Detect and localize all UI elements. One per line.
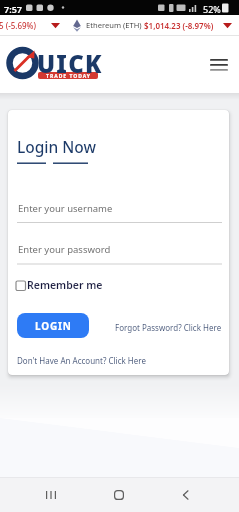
staticText: Ethereum (ETH) bbox=[86, 20, 142, 30]
staticText: Enter your password bbox=[18, 243, 111, 256]
button[interactable]: Enter your password bbox=[17, 239, 222, 265]
button[interactable]: Don't Have An Account? Click Here bbox=[14, 353, 149, 367]
staticText: 52% bbox=[203, 3, 221, 15]
staticText: UICK bbox=[37, 47, 103, 80]
staticText: $1,014.23 (-8.97%) bbox=[144, 20, 214, 31]
staticText: 5 (-5.69%) bbox=[0, 20, 36, 31]
button[interactable]: Remember me bbox=[14, 276, 119, 294]
staticText: 7:57 bbox=[4, 3, 22, 15]
button[interactable]: UICK bbox=[8, 45, 108, 85]
staticText: Don't Have An Account? Click Here bbox=[17, 355, 146, 366]
button[interactable] bbox=[204, 53, 234, 77]
staticText: LOGIN bbox=[35, 319, 72, 333]
staticText: Login Now bbox=[17, 136, 96, 157]
button[interactable] bbox=[95, 477, 143, 512]
button[interactable] bbox=[27, 477, 75, 512]
staticText: Enter your username bbox=[18, 202, 113, 215]
button[interactable]: Forgot Password? Click Here bbox=[111, 320, 229, 334]
staticText: Forgot Password? Click Here bbox=[115, 322, 222, 333]
button[interactable]: Enter your username bbox=[17, 198, 222, 224]
button[interactable] bbox=[162, 477, 210, 512]
button[interactable]: LOGIN bbox=[17, 313, 89, 338]
staticText: TRADE TODAY bbox=[46, 73, 91, 80]
button[interactable]: 5 (-5.69%) bbox=[0, 15, 239, 36]
staticText: Remember me bbox=[27, 278, 103, 292]
